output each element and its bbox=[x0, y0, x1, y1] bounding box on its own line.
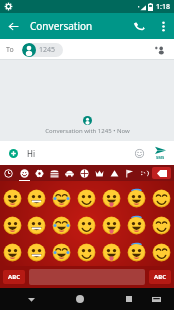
button[interactable]: Emoji 17 bbox=[49, 239, 74, 266]
button[interactable]: Recents bbox=[118, 288, 140, 310]
button[interactable]: Back bbox=[20, 288, 42, 310]
button[interactable]: Call bbox=[126, 13, 152, 39]
button[interactable]: Emoji 7 bbox=[149, 184, 174, 212]
button[interactable]: Emoji 11 bbox=[74, 212, 99, 239]
button[interactable]: Smileys bbox=[16, 165, 32, 181]
button[interactable]: Symbols bbox=[107, 165, 122, 181]
button[interactable]: Emoji 3 bbox=[49, 184, 74, 212]
button[interactable]: More options bbox=[152, 15, 174, 37]
button[interactable]: Emoji 18 bbox=[74, 239, 99, 266]
button[interactable]: Travel bbox=[62, 165, 77, 181]
button[interactable]: Emoji 14 bbox=[149, 212, 174, 239]
button[interactable]: Emoji 15 bbox=[0, 239, 24, 266]
button[interactable]: Send SMS bbox=[151, 143, 169, 163]
button[interactable]: Objects bbox=[92, 165, 107, 181]
staticText: Conversation with 1245 • Now bbox=[45, 127, 130, 135]
button[interactable]: Emoji 13 bbox=[124, 212, 149, 239]
button[interactable]: Switch keyboard bbox=[146, 289, 166, 309]
button[interactable]: Home bbox=[69, 288, 91, 310]
button[interactable]: Recent bbox=[0, 165, 16, 181]
button[interactable]: Emoji 19 bbox=[99, 239, 124, 266]
button[interactable]: Emoji 16 bbox=[24, 239, 49, 266]
button[interactable]: Emoji 5 bbox=[99, 184, 124, 212]
button[interactable]: Attach bbox=[5, 145, 21, 161]
staticText: SMS bbox=[156, 155, 165, 160]
staticText: ABC bbox=[8, 273, 20, 281]
button[interactable]: Emoji 21 bbox=[149, 239, 174, 266]
button[interactable]: Emoji 12 bbox=[99, 212, 124, 239]
button[interactable]: Emoji 4 bbox=[74, 184, 99, 212]
button[interactable]: Back bbox=[0, 13, 26, 39]
staticText: To bbox=[6, 45, 14, 55]
button[interactable]: Emoji 10 bbox=[49, 212, 74, 239]
button[interactable]: Backspace bbox=[152, 167, 171, 179]
button[interactable]: Emoji 1 bbox=[0, 184, 24, 212]
button[interactable]: ABC bbox=[3, 270, 25, 284]
button[interactable]: Emoji 20 bbox=[124, 239, 149, 266]
button[interactable]: Flags bbox=[122, 165, 137, 181]
button[interactable]: Emoji 2 bbox=[24, 184, 49, 212]
staticText: ABC bbox=[154, 273, 166, 281]
button[interactable]: 1245 bbox=[22, 43, 63, 57]
button[interactable]: Emoji 9 bbox=[24, 212, 49, 239]
button[interactable]: ABC bbox=[149, 270, 171, 284]
button[interactable]: Emoji 8 bbox=[0, 212, 24, 239]
button[interactable]: Emoji 6 bbox=[124, 184, 149, 212]
button[interactable]: Nature bbox=[32, 165, 47, 181]
staticText: Conversation bbox=[30, 19, 126, 33]
button[interactable]: Food bbox=[47, 165, 62, 181]
button[interactable]: Emoji bbox=[131, 145, 147, 161]
button[interactable]: Emoticons bbox=[137, 165, 152, 181]
staticText: Hi bbox=[27, 148, 35, 159]
staticText: 1:18 bbox=[156, 2, 170, 12]
button[interactable]: Activity bbox=[77, 165, 92, 181]
button[interactable]: Add recipient bbox=[152, 42, 168, 58]
staticText: 1245 bbox=[39, 45, 56, 55]
